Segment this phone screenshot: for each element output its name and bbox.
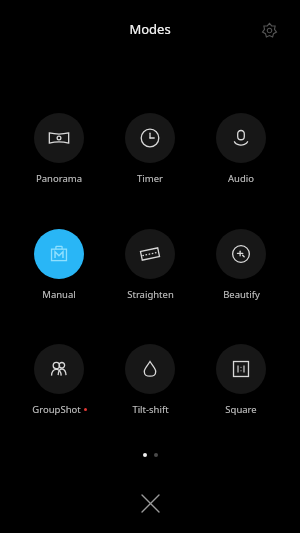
button[interactable]: GroupShot xyxy=(21,344,97,416)
button[interactable]: Beautify xyxy=(203,229,279,301)
button[interactable]: Timer xyxy=(112,113,188,185)
button[interactable]: Square xyxy=(203,344,279,416)
button[interactable]: Tilt-shift xyxy=(112,344,188,416)
button[interactable]: Straighten xyxy=(112,229,188,301)
staticText: Square xyxy=(225,403,257,416)
staticText: Panorama xyxy=(36,172,82,185)
button[interactable]: Close xyxy=(128,481,172,525)
staticText: Timer xyxy=(137,172,163,185)
staticText: Tilt-shift xyxy=(132,403,169,416)
staticText: Beautify xyxy=(223,288,260,301)
staticText: Modes xyxy=(129,20,171,38)
staticText: Straighten xyxy=(127,288,174,301)
staticText: Audio xyxy=(228,172,254,185)
button[interactable]: Settings xyxy=(252,13,286,47)
button[interactable]: Audio xyxy=(203,113,279,185)
button[interactable]: Panorama xyxy=(21,113,97,185)
button[interactable]: Manual xyxy=(21,229,97,301)
staticText: GroupShot xyxy=(32,403,81,416)
staticText: Manual xyxy=(42,288,76,301)
